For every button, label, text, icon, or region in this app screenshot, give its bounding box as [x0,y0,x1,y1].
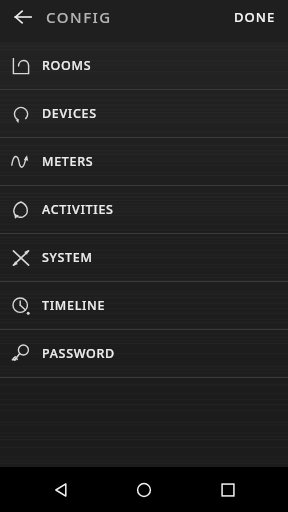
button[interactable]: Back [8,2,38,32]
button[interactable]: Home [121,467,167,512]
button[interactable]: DEVICES [0,90,288,137]
staticText: ACTIVITIES [42,201,114,218]
button[interactable]: PASSWORD [0,330,288,377]
button[interactable]: ROOMS [0,42,288,89]
staticText: DEVICES [42,105,97,122]
staticText: DONE [234,8,276,26]
button[interactable]: Recent apps [205,467,251,512]
button[interactable]: Back [38,467,84,512]
staticText: PASSWORD [42,345,115,362]
button[interactable]: DONE [222,0,288,34]
button[interactable]: METERS [0,138,288,185]
button[interactable]: SYSTEM [0,234,288,281]
staticText: SYSTEM [42,249,93,266]
button[interactable]: TIMELINE [0,282,288,329]
staticText: CONFIG [46,7,112,27]
staticText: METERS [42,153,94,170]
staticText: TIMELINE [42,297,106,314]
button[interactable]: ACTIVITIES [0,186,288,233]
staticText: ROOMS [42,57,92,74]
